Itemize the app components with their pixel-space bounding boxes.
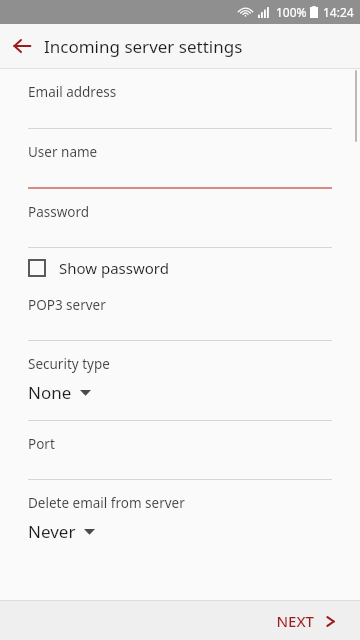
button[interactable]: Port: [0, 421, 360, 480]
staticText: Port: [28, 435, 55, 453]
staticText: Show password: [59, 258, 169, 278]
staticText: Never: [28, 520, 76, 543]
staticText: Password: [28, 203, 90, 221]
button[interactable]: Security type: [0, 341, 360, 404]
button[interactable]: Password: [0, 189, 360, 248]
staticText: 100%: [276, 4, 307, 20]
staticText: User name: [28, 143, 98, 161]
button[interactable]: User name: [0, 129, 360, 189]
button[interactable]: Back: [0, 24, 44, 68]
staticText: None: [28, 381, 72, 404]
staticText: Security type: [28, 355, 110, 373]
button[interactable]: Show password: [0, 252, 360, 284]
button[interactable]: NEXT: [198, 611, 360, 631]
staticText: Incoming server settings: [44, 35, 243, 58]
staticText: 14:24: [323, 4, 354, 20]
staticText: NEXT: [276, 611, 314, 631]
staticText: POP3 server: [28, 296, 106, 314]
button[interactable]: POP3 server: [0, 296, 360, 341]
staticText: Email address: [28, 83, 117, 101]
button[interactable]: Email address: [0, 69, 360, 129]
button[interactable]: Delete email from server: [0, 480, 360, 543]
staticText: Delete email from server: [28, 494, 185, 512]
